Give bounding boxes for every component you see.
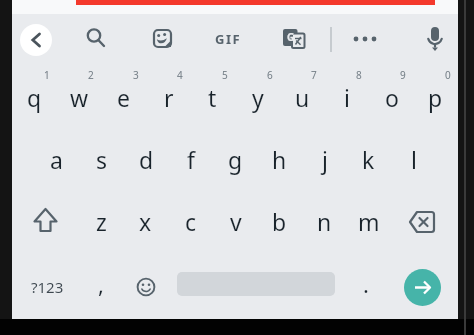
button[interactable] — [20, 24, 52, 56]
staticText: y — [252, 82, 264, 113]
button[interactable]: e — [101, 66, 146, 128]
button[interactable]: d — [124, 128, 169, 190]
staticText: w — [70, 82, 89, 113]
staticText: m — [358, 206, 380, 237]
staticText: u — [295, 82, 310, 113]
staticText: z — [96, 206, 107, 237]
button[interactable]: c — [168, 190, 213, 252]
button[interactable]: o — [369, 66, 414, 128]
staticText: j — [322, 144, 328, 175]
staticText: h — [272, 144, 287, 175]
button[interactable]: k — [346, 128, 391, 190]
button[interactable]: y — [235, 66, 280, 128]
button[interactable]: g — [213, 128, 258, 190]
button[interactable] — [349, 23, 381, 55]
staticText: 5 — [222, 68, 228, 82]
staticText: a — [50, 144, 63, 175]
staticText: 9 — [400, 68, 406, 82]
button[interactable]: p — [413, 66, 458, 128]
staticText: n — [317, 206, 332, 237]
button[interactable]: s — [79, 128, 124, 190]
button[interactable]: GIF — [208, 26, 248, 52]
button[interactable]: l — [391, 128, 436, 190]
button[interactable]: n — [302, 190, 347, 252]
button[interactable]: a — [34, 128, 79, 190]
button[interactable]: h — [257, 128, 302, 190]
button[interactable]: r — [146, 66, 191, 128]
button[interactable] — [278, 22, 314, 58]
button[interactable] — [146, 23, 178, 55]
staticText: s — [96, 144, 108, 175]
staticText: x — [139, 206, 152, 237]
button[interactable]: j — [302, 128, 347, 190]
staticText: 7 — [311, 68, 317, 82]
button[interactable]: ?123 — [24, 265, 70, 309]
button[interactable]: u — [280, 66, 325, 128]
staticText: 0 — [445, 68, 451, 82]
button[interactable] — [23, 200, 68, 245]
staticText: 1 — [44, 68, 50, 82]
button[interactable]: . — [353, 262, 379, 306]
button[interactable]: z — [79, 190, 124, 252]
button[interactable]: q — [12, 66, 57, 128]
button[interactable]: i — [324, 66, 369, 128]
staticText: 2 — [88, 68, 94, 82]
staticText: d — [139, 144, 154, 175]
button[interactable]: w — [57, 66, 102, 128]
staticText: p — [428, 82, 443, 113]
staticText: k — [362, 144, 375, 175]
staticText: l — [411, 144, 417, 175]
staticText: . — [363, 269, 369, 299]
button[interactable] — [81, 23, 113, 55]
button[interactable]: t — [190, 66, 235, 128]
button[interactable]: v — [213, 190, 258, 252]
staticText: b — [272, 206, 287, 237]
staticText: 3 — [133, 68, 139, 82]
staticText: v — [230, 206, 242, 237]
button[interactable]: b — [257, 190, 302, 252]
staticText: 8 — [356, 68, 362, 82]
button[interactable] — [419, 22, 451, 56]
staticText: e — [117, 82, 130, 113]
button[interactable]: , — [88, 262, 114, 306]
staticText: c — [185, 206, 197, 237]
staticText: 4 — [177, 68, 183, 82]
staticText: g — [228, 144, 243, 175]
staticText: o — [385, 82, 399, 113]
button[interactable]: f — [168, 128, 213, 190]
staticText: 6 — [267, 68, 273, 82]
staticText: G — [287, 30, 295, 44]
staticText: f — [187, 144, 195, 175]
staticText: t — [208, 82, 217, 113]
staticText: q — [27, 82, 42, 113]
staticText: GIF — [215, 30, 242, 48]
staticText: r — [164, 82, 174, 113]
button[interactable]: x — [123, 190, 168, 252]
button[interactable] — [130, 271, 162, 303]
staticText: i — [344, 82, 350, 113]
button[interactable] — [400, 200, 445, 245]
staticText: ?123 — [31, 277, 64, 297]
button[interactable] — [404, 269, 441, 306]
staticText: , — [98, 269, 104, 299]
button[interactable]: m — [346, 190, 391, 252]
